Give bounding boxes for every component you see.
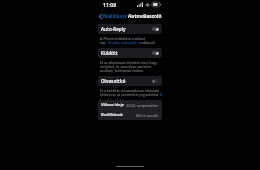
staticText: A iPhone oldalaként a választ megkapó üg… (100, 36, 160, 40)
staticText: Küldött üzenetek (101, 50, 126, 56)
staticText: Ez a beállítás automatikusan olvasottá j… (100, 88, 160, 92)
staticText: Autoválaszoló (128, 13, 162, 20)
button[interactable]: Auto-Reply (98, 24, 162, 34)
staticText: Olvasottként (101, 78, 126, 84)
staticText: felismerve az üzeneteket jegyzetekkel. (100, 92, 160, 96)
button[interactable]: További tudnivalók (108, 40, 138, 44)
button[interactable]: Válasz ideje (98, 100, 162, 110)
other: Back (99, 14, 102, 19)
staticText: Auto-Reply (101, 26, 126, 32)
staticText: Beállítások (103, 13, 127, 19)
button[interactable]: Back (98, 12, 128, 20)
staticText: Válasz ideje (101, 102, 125, 108)
staticText: kap. (100, 40, 108, 44)
staticText: azokban, különböző módon. (100, 68, 144, 72)
button[interactable]: Olvasottként (98, 76, 162, 86)
staticText: Beállítások (101, 112, 123, 118)
staticText: 2024. szeptember (126, 103, 159, 108)
staticText: Ez az alkalmazás lehetővé teszi, hogy ki… (100, 60, 160, 64)
staticText: a válaszról. (138, 40, 156, 44)
staticText: Elérő opciók (136, 113, 159, 118)
button[interactable]: Beállítások (98, 110, 162, 120)
staticText: melyeket, és személyes üzenetek formában… (100, 64, 160, 68)
button[interactable]: Toggle off (152, 79, 159, 83)
staticText: 11:08 (103, 1, 117, 8)
button[interactable]: Küldött üzenetek (98, 48, 162, 58)
button[interactable]: Toggle on (152, 51, 159, 55)
button[interactable]: Toggle on (152, 27, 159, 31)
